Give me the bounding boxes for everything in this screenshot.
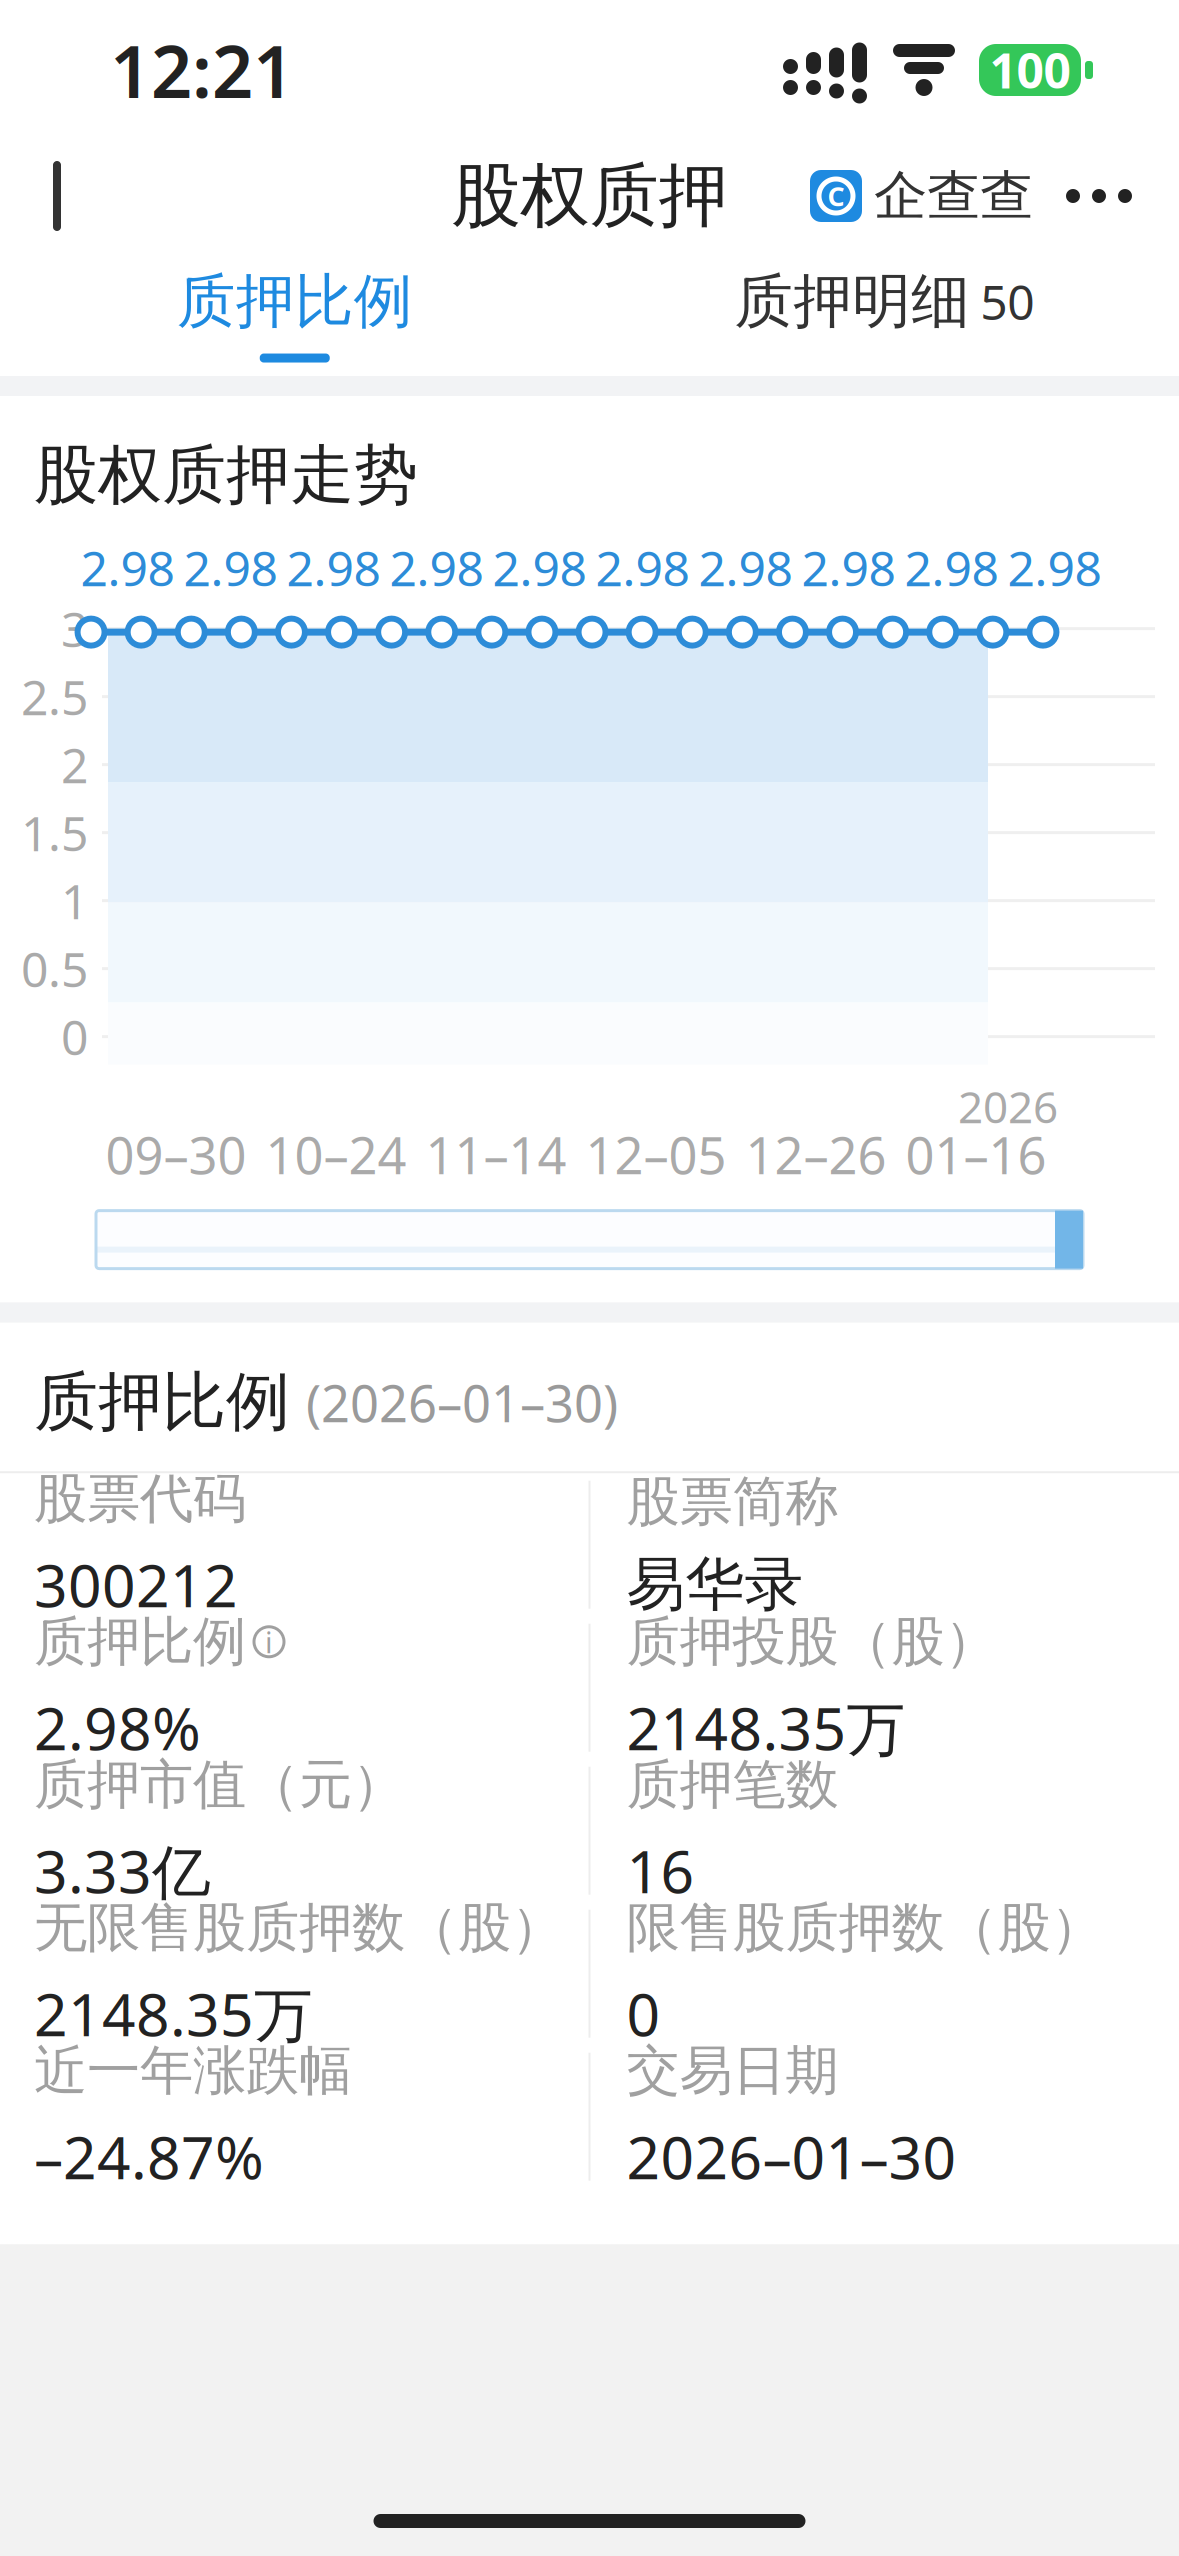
staticText: 2.98 [80, 536, 174, 599]
staticText: i [265, 1622, 273, 1661]
staticText: 3 [61, 597, 88, 660]
staticText: 2.98 [1007, 536, 1101, 599]
staticText: 质押比例 [177, 265, 413, 338]
staticText: 2148.35万 [626, 1688, 905, 1766]
staticText: C [827, 178, 844, 214]
staticText: 0.5 [21, 937, 88, 1000]
staticText: 1.5 [21, 801, 88, 864]
staticText: 企查查 [874, 163, 1033, 229]
staticText: 质押市值（元） [34, 1752, 405, 1817]
staticText: 2.98 [595, 536, 689, 599]
staticText: 10–24 [265, 1121, 406, 1188]
button[interactable]: 质押比例 [0, 243, 589, 385]
staticText: 50 [980, 270, 1034, 333]
button[interactable]: 更多 [1041, 140, 1157, 252]
staticText: 11–14 [425, 1121, 566, 1188]
staticText: 2.98 [698, 536, 792, 599]
staticText: 质押比例 [34, 1363, 290, 1441]
staticText: 股票简称 [626, 1469, 838, 1534]
staticText: 100 [989, 38, 1070, 102]
staticText: (2026–01–30) [306, 1369, 618, 1436]
staticText: 无限售股质押数（股） [34, 1895, 564, 1960]
staticText: 易华录 [626, 1548, 803, 1620]
staticText: 质押投股（股） [626, 1609, 997, 1674]
staticText: 质押笔数 [626, 1752, 838, 1817]
staticText: 2.98 [492, 536, 586, 599]
staticText: 0 [626, 1974, 660, 2052]
staticText: 01–16 [905, 1121, 1046, 1188]
button[interactable]: 返回 [0, 140, 130, 252]
staticText: 1 [61, 869, 88, 932]
staticText: 2026–01–30 [626, 2117, 956, 2195]
staticText: 2.98% [34, 1688, 201, 1766]
staticText: 股权质押走势 [34, 436, 418, 515]
staticText: 股票代码 [34, 1466, 246, 1531]
staticText: 交易日期 [626, 2038, 838, 2103]
staticText: 2.98 [183, 536, 277, 599]
staticText: 2.98 [389, 536, 483, 599]
staticText: 质押明细 [734, 265, 970, 338]
staticText: 限售股质押数（股） [626, 1895, 1103, 1960]
staticText: 0 [61, 1005, 88, 1068]
staticText: 近一年涨跌幅 [34, 2038, 352, 2103]
button[interactable]: C [802, 140, 1041, 252]
staticText: 300212 [34, 1545, 238, 1623]
staticText: 2.98 [904, 536, 998, 599]
staticText: 12–26 [745, 1121, 886, 1188]
staticText: 股权质押 [451, 153, 727, 239]
staticText: 12:21 [110, 22, 294, 118]
button[interactable]: 时间范围 [96, 1211, 1083, 1269]
staticText: –24.87% [34, 2117, 264, 2195]
staticText: 09–30 [105, 1121, 246, 1188]
button[interactable]: 质押明细 [589, 243, 1179, 385]
staticText: 3.33亿 [34, 1831, 211, 1909]
staticText: 12–05 [585, 1121, 726, 1188]
staticText: 2.98 [801, 536, 895, 599]
staticText: 2 [61, 733, 88, 796]
staticText: 2.5 [21, 665, 88, 728]
staticText: 质押比例 [34, 1609, 246, 1674]
staticText: 16 [626, 1831, 694, 1909]
staticText: 2.98 [286, 536, 380, 599]
staticText: 2148.35万 [34, 1974, 313, 2052]
staticText: 2026 [958, 1077, 1058, 1135]
